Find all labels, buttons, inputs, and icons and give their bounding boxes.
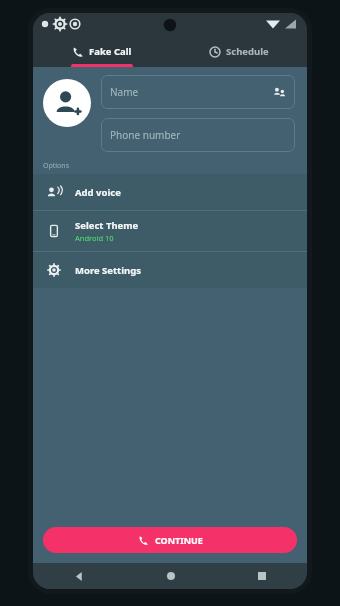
staticText: Fake Call <box>89 45 132 58</box>
staticText: Add voice <box>75 186 121 199</box>
button[interactable]: Add voice <box>33 174 307 210</box>
other: Pick contact <box>273 86 286 99</box>
button[interactable]: Recent apps <box>216 563 307 589</box>
button[interactable]: Schedule <box>170 35 307 67</box>
button[interactable]: CONTINUE <box>43 527 297 553</box>
staticText: Phone number <box>110 128 181 142</box>
staticText: CONTINUE <box>155 534 203 546</box>
button[interactable]: Add contact photo <box>43 79 91 127</box>
staticText: More Settings <box>75 264 142 277</box>
button[interactable]: Back <box>33 563 125 589</box>
staticText: Android 10 <box>75 233 114 243</box>
button[interactable]: Fake Call <box>33 35 170 67</box>
button[interactable]: Name <box>101 75 295 109</box>
button[interactable]: More Settings <box>33 252 307 288</box>
staticText: Schedule <box>226 45 269 58</box>
staticText: Name <box>110 85 139 99</box>
button[interactable]: Phone number <box>101 118 295 152</box>
staticText: Options <box>43 161 70 171</box>
button[interactable]: Select Theme <box>33 211 307 251</box>
staticText: Select Theme <box>75 219 139 232</box>
button[interactable]: Home <box>125 563 216 589</box>
